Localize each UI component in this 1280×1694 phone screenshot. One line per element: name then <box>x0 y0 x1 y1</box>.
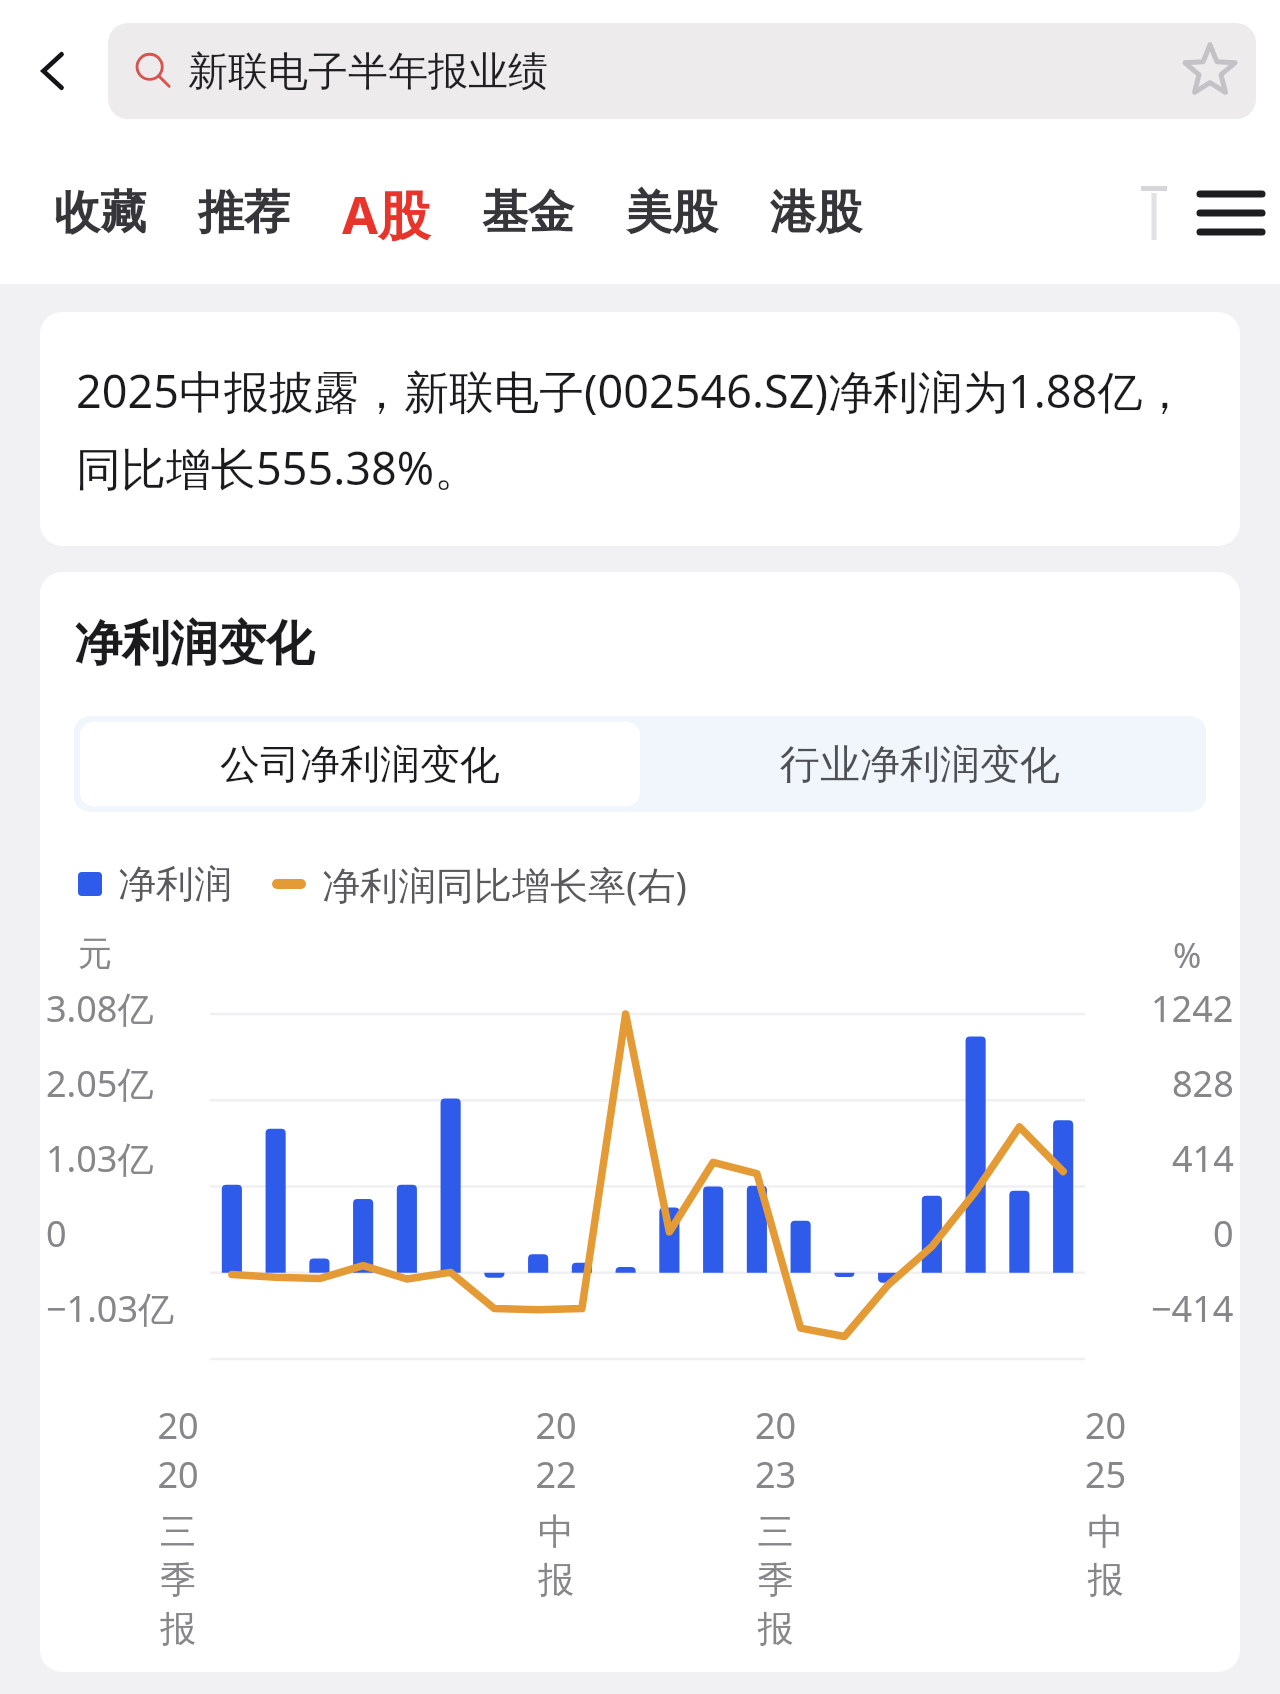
staticText: 新联电子半年报业绩 <box>188 46 548 96</box>
staticText: 2.05亿 <box>46 1059 154 1108</box>
staticText: 净利润变化 <box>74 614 314 674</box>
staticText: 收藏 <box>54 184 146 242</box>
staticText: 2022 <box>529 1401 583 1499</box>
staticText: A股 <box>342 178 430 249</box>
staticText: 行业净利润变化 <box>780 739 1060 789</box>
button[interactable]: Back <box>0 0 108 142</box>
staticText: 中报 <box>529 1509 583 1603</box>
button[interactable]: Favorite <box>1180 41 1240 101</box>
button[interactable]: 公司净利润变化 <box>80 722 640 806</box>
staticText: 414 <box>1172 1134 1234 1183</box>
staticText: 1242 <box>1151 984 1234 1033</box>
button[interactable]: 基金 <box>456 142 600 284</box>
staticText: 三季报 <box>151 1509 205 1652</box>
staticText: 2023 <box>748 1401 803 1499</box>
button[interactable]: A股 <box>316 142 456 284</box>
staticText: 中报 <box>1078 1509 1133 1603</box>
button[interactable]: 美股 <box>600 142 744 284</box>
staticText: 推荐 <box>198 184 290 242</box>
button[interactable]: Menu <box>1182 142 1280 284</box>
button[interactable]: More tabs <box>1126 142 1182 284</box>
staticText: 0 <box>1213 1209 1234 1258</box>
button[interactable]: 2025中报披露，新联电子(002546.SZ)净利润为1.88亿，同比增长55… <box>40 312 1240 546</box>
staticText: 港股 <box>770 184 862 242</box>
staticText: % <box>1173 932 1202 978</box>
staticText: 0 <box>46 1209 67 1258</box>
button[interactable]: 新联电子半年报业绩 <box>108 23 1256 119</box>
staticText: 公司净利润变化 <box>220 739 500 789</box>
staticText: 828 <box>1172 1059 1234 1108</box>
staticText: 1.03亿 <box>46 1134 154 1183</box>
staticText: 2025中报披露，新联电子(002546.SZ)净利润为1.88亿，同比增长55… <box>76 360 1204 498</box>
staticText: 三季报 <box>748 1509 803 1652</box>
staticText: 净利润同比增长率(右) <box>322 858 687 910</box>
staticText: −414 <box>1151 1284 1234 1333</box>
staticText: 3.08亿 <box>46 984 154 1033</box>
staticText: −1.03亿 <box>46 1284 175 1333</box>
button[interactable]: 行业净利润变化 <box>640 722 1200 806</box>
button[interactable]: 收藏 <box>28 142 172 284</box>
staticText: 2020 <box>151 1401 205 1499</box>
staticText: 2025 <box>1078 1401 1133 1499</box>
staticText: 基金 <box>482 184 574 242</box>
staticText: 净利润 <box>118 860 232 908</box>
button[interactable]: 港股 <box>744 142 888 284</box>
button[interactable]: 推荐 <box>172 142 316 284</box>
staticText: 元 <box>78 932 112 975</box>
staticText: 美股 <box>626 184 718 242</box>
